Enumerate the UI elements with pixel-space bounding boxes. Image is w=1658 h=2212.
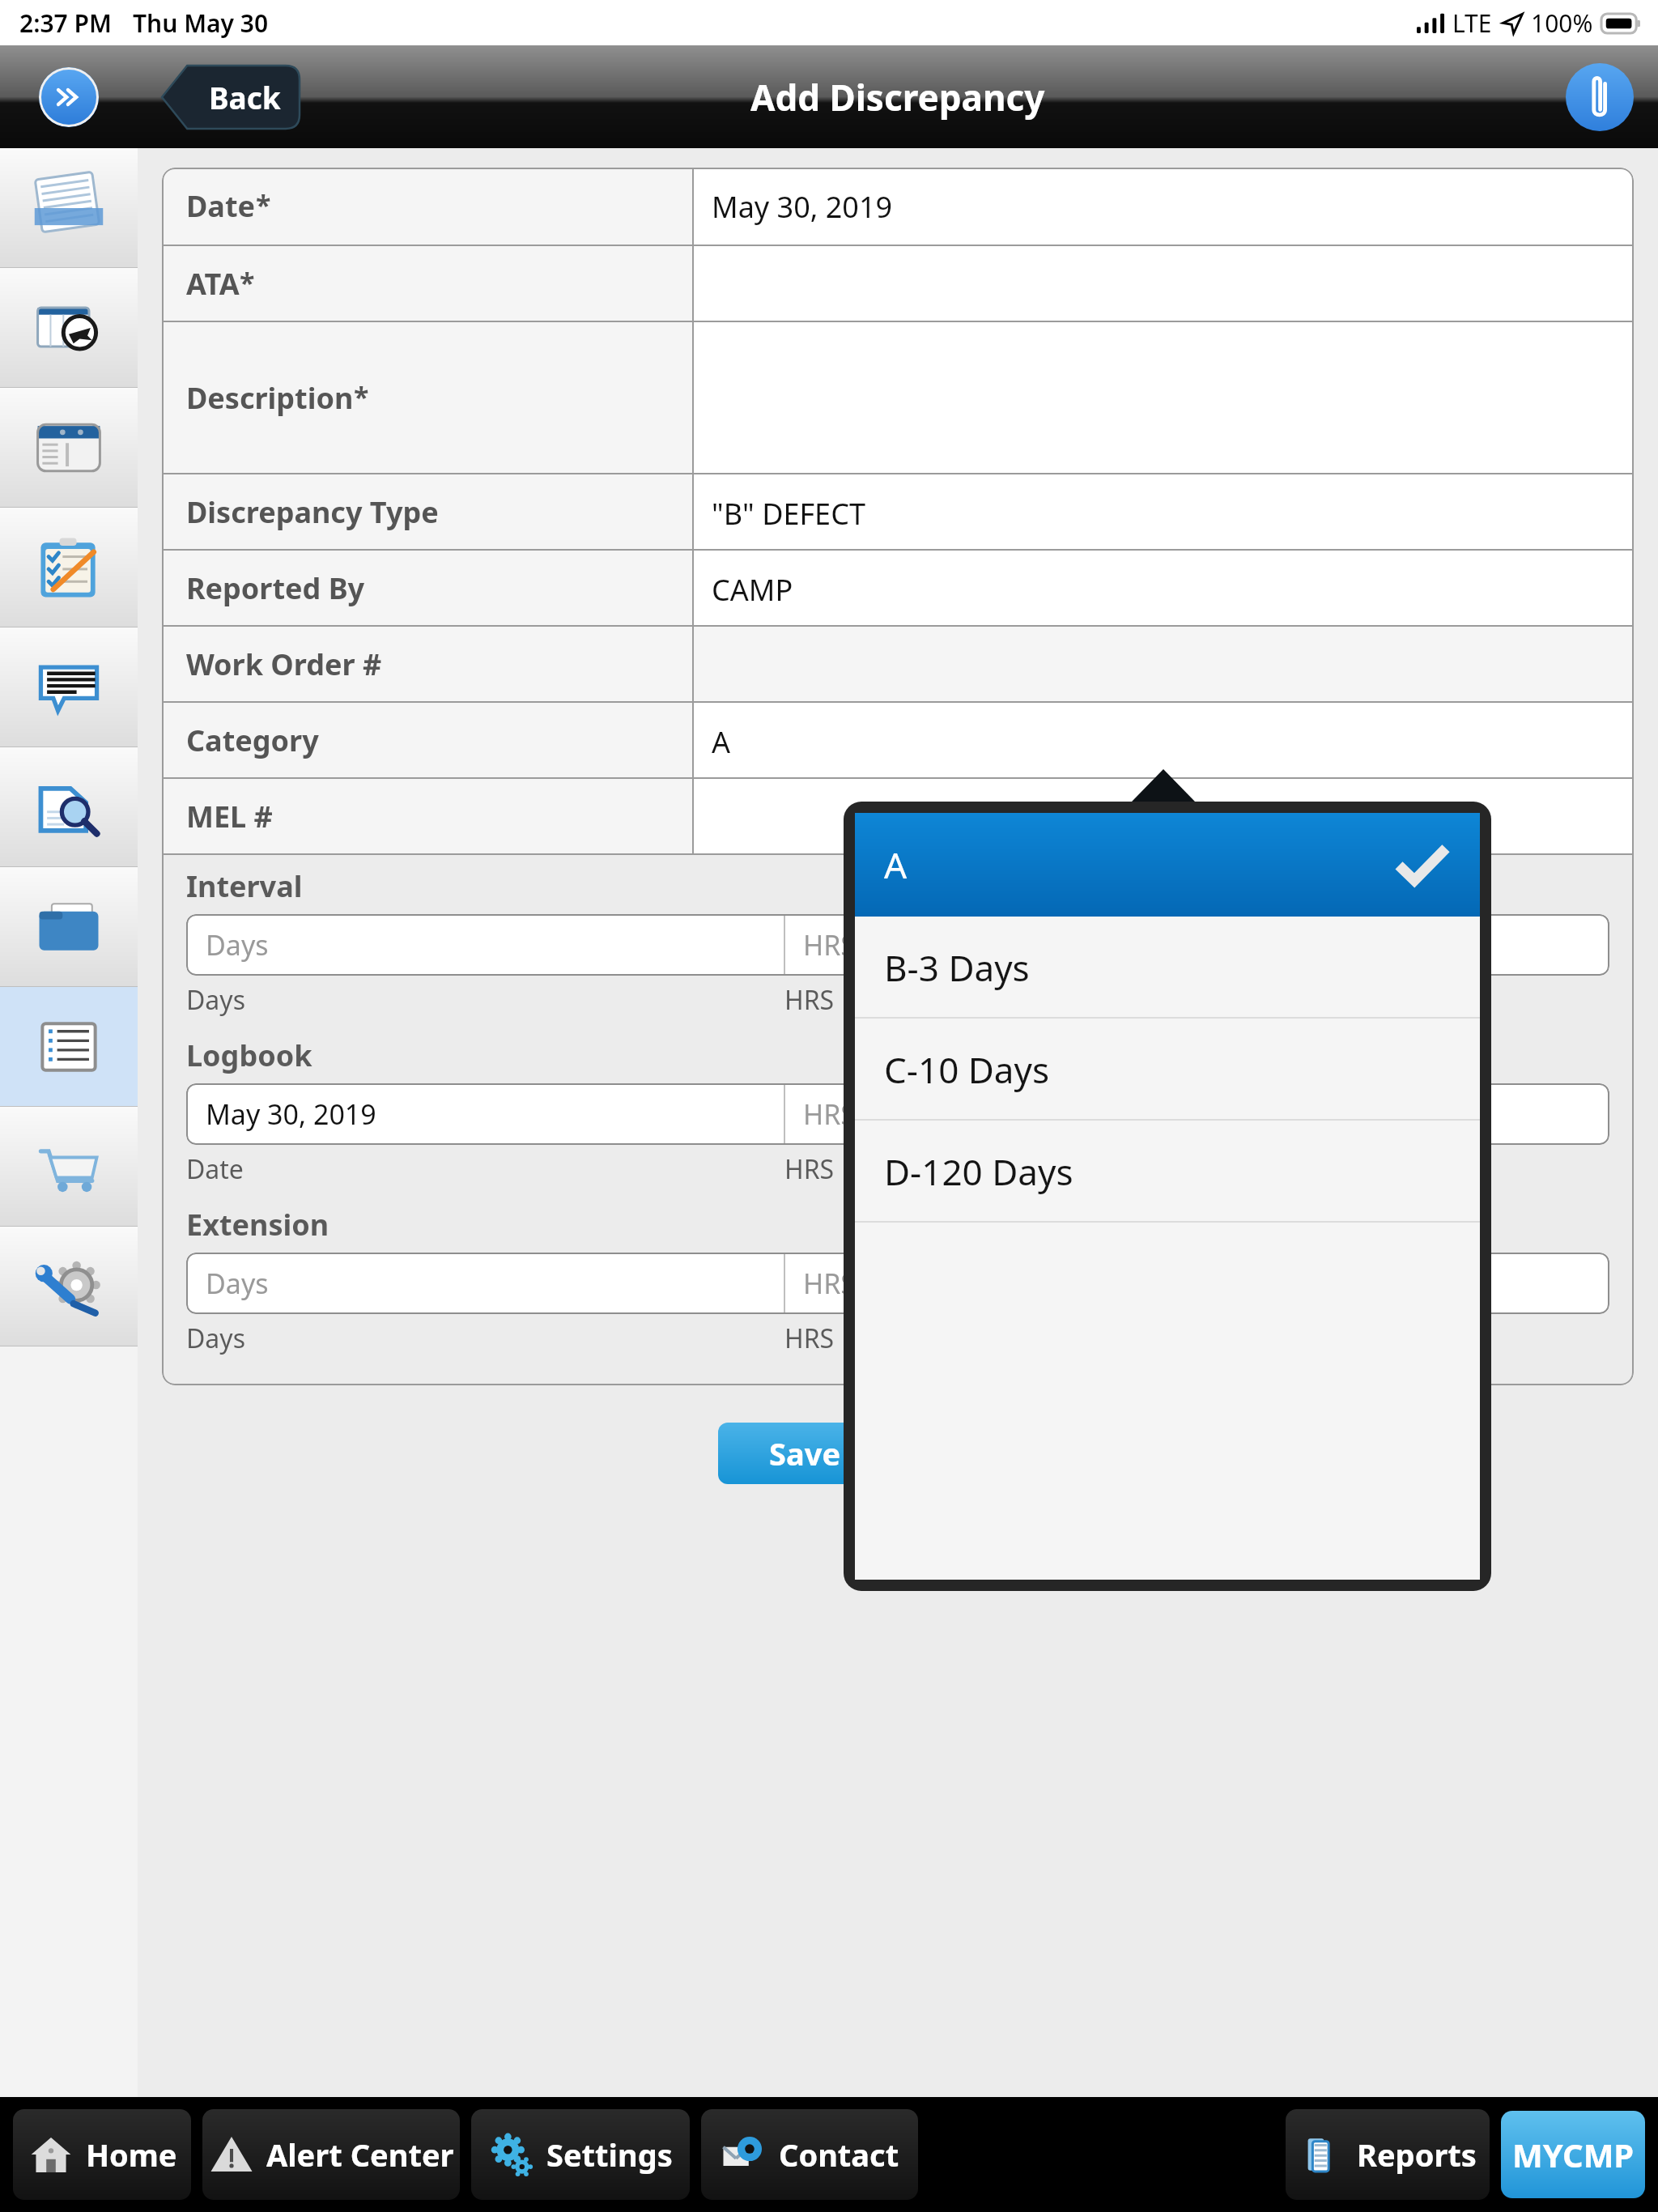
button[interactable]: Messages [0, 627, 138, 747]
staticText: B-3 Days [884, 943, 1030, 992]
button[interactable]: Category [162, 703, 1634, 777]
staticText: May 30, 2019 [712, 187, 893, 227]
button[interactable]: HRS [785, 1253, 1609, 1314]
button[interactable]: C-10 Days [855, 1019, 1480, 1121]
button[interactable]: Attachments [1566, 63, 1634, 131]
staticText: Discrepancy Type [186, 492, 439, 532]
staticText: 100% [1531, 6, 1593, 40]
button[interactable]: Overview [0, 148, 138, 268]
staticText: HRS [803, 926, 857, 963]
button[interactable]: Notepad [0, 388, 138, 508]
staticText: C-10 Days [884, 1045, 1050, 1094]
button[interactable]: Search documents [0, 747, 138, 867]
staticText: Thu May 30 [133, 6, 269, 40]
staticText: MEL # [186, 797, 273, 836]
staticText: * [240, 264, 255, 301]
button[interactable]: Reported By [162, 551, 1634, 625]
staticText: Back [209, 77, 281, 117]
staticText: * [256, 186, 271, 223]
button[interactable]: Tasks [0, 508, 138, 627]
button[interactable]: Days [186, 914, 784, 976]
button[interactable]: HRS [785, 914, 1609, 976]
staticText: Work Order # [186, 644, 382, 684]
button[interactable]: Alert Center [202, 2109, 460, 2200]
button[interactable]: Back [162, 66, 300, 129]
staticText: * [354, 378, 369, 415]
staticText: 2:37 PM [19, 6, 112, 40]
staticText: Days [206, 1265, 269, 1302]
staticText: Interval [186, 866, 303, 906]
button[interactable]: Description [162, 322, 1634, 473]
staticText: Description [186, 378, 354, 418]
staticText: "B" DEFECT [712, 494, 865, 534]
staticText: CAMP [712, 570, 793, 610]
button[interactable]: Maintenance [0, 1227, 138, 1346]
staticText: Alert Center [266, 2133, 454, 2176]
button[interactable]: D-120 Days [855, 1121, 1480, 1223]
staticText: Days [206, 926, 269, 963]
staticText: HRS [803, 1265, 857, 1302]
button[interactable]: Discrepancies [0, 987, 138, 1107]
staticText: Logbook [186, 1036, 312, 1075]
staticText: A [884, 840, 908, 889]
button[interactable]: Reports [1286, 2109, 1490, 2200]
button[interactable]: MEL # [162, 779, 1634, 853]
button[interactable]: May 30, 2019 [186, 1083, 784, 1145]
button[interactable]: Days [186, 1253, 784, 1314]
staticText: Contact [779, 2133, 899, 2176]
staticText: Days [186, 982, 245, 1018]
button[interactable]: A [855, 813, 1480, 917]
staticText: D-120 Days [884, 1147, 1073, 1196]
button[interactable]: Discrepancy Type [162, 474, 1634, 549]
button[interactable]: Schedule [0, 268, 138, 388]
staticText: Date [186, 186, 256, 226]
staticText: May 30, 2019 [206, 1095, 376, 1133]
button[interactable]: Contact [701, 2109, 918, 2200]
staticText: A [712, 722, 731, 762]
staticText: Settings [546, 2133, 673, 2176]
staticText: Days [186, 1321, 245, 1356]
button[interactable]: Save [718, 1423, 892, 1484]
button[interactable]: Settings [471, 2109, 690, 2200]
button[interactable]: Date [162, 168, 1634, 245]
button[interactable]: ATA [162, 246, 1634, 321]
staticText: HRS [784, 1321, 835, 1356]
button[interactable]: Orders [0, 1107, 138, 1227]
staticText: LTE [1452, 6, 1492, 40]
staticText: Save [769, 1432, 841, 1474]
staticText: Extension [186, 1205, 329, 1244]
button[interactable]: HRS [785, 1083, 1609, 1145]
button[interactable]: AD/SI [0, 867, 138, 987]
staticText: HRS [803, 1095, 857, 1133]
button[interactable]: MYCMP [1501, 2111, 1645, 2198]
button[interactable]: Expand menu [0, 45, 138, 148]
staticText: Add Discrepancy [750, 73, 1045, 121]
staticText: ATA [186, 264, 240, 304]
button[interactable]: Home [13, 2109, 191, 2200]
staticText: MYCMP [1512, 2133, 1635, 2176]
button[interactable]: B-3 Days [855, 917, 1480, 1019]
staticText: Category [186, 721, 319, 760]
button[interactable]: Work Order # [162, 627, 1634, 701]
staticText: Date [186, 1151, 244, 1187]
staticText: HRS [784, 982, 835, 1018]
staticText: Reported By [186, 568, 365, 608]
staticText: HRS [784, 1151, 835, 1187]
staticText: Reports [1357, 2133, 1477, 2176]
staticText: Home [86, 2133, 177, 2176]
